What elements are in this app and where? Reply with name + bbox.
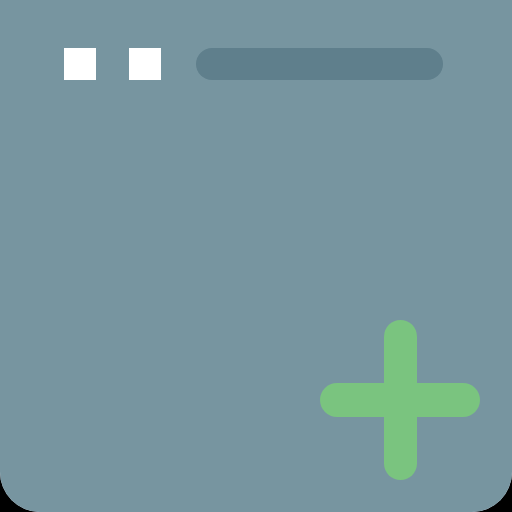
button[interactable]: Search	[196, 48, 443, 80]
button[interactable]: Add	[320, 320, 480, 480]
